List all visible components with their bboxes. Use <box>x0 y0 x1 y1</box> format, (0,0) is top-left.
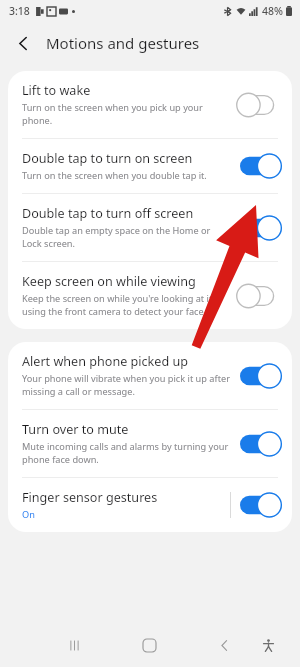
staticText: Double tap to turn off screen <box>22 205 194 222</box>
staticText: Turn over to mute <box>22 421 129 438</box>
button[interactable]: On <box>240 492 282 518</box>
staticText: On <box>22 508 35 521</box>
button[interactable]: Accessibility <box>250 627 286 663</box>
button[interactable]: On <box>240 153 282 179</box>
staticText: Mute incoming calls and alarms by turnin… <box>22 440 232 466</box>
button[interactable]: Off <box>240 283 282 309</box>
button[interactable]: Finger sensor gestures <box>8 478 292 532</box>
button[interactable]: Recents <box>54 625 94 665</box>
button[interactable]: Double tap to turn on screen <box>8 139 292 193</box>
button[interactable]: Back <box>204 625 244 665</box>
staticText: Alert when phone picked up <box>22 353 188 370</box>
staticText: Finger sensor gestures <box>22 489 158 506</box>
button[interactable]: On <box>240 363 282 389</box>
staticText: Keep the screen on while you're looking … <box>22 292 232 318</box>
button[interactable]: Alert when phone picked up <box>8 342 292 409</box>
button[interactable]: Off <box>240 92 282 118</box>
staticText: Turn on the screen when you pick up your… <box>22 101 232 127</box>
button[interactable]: Back <box>6 26 40 60</box>
staticText: Double tap an empty space on the Home or… <box>22 224 232 250</box>
button[interactable]: Turn over to mute <box>8 410 292 477</box>
button[interactable]: On <box>240 215 282 241</box>
staticText: 48% <box>262 4 283 18</box>
staticText: 3:18 <box>9 4 30 18</box>
button[interactable]: Double tap to turn off screen <box>8 194 292 261</box>
staticText: Your phone will vibrate when you pick it… <box>22 372 232 398</box>
staticText: Lift to wake <box>22 82 91 99</box>
button[interactable]: Home <box>129 625 169 665</box>
staticText: Motions and gestures <box>46 33 200 53</box>
staticText: Turn on the screen when you double tap i… <box>22 169 207 182</box>
button[interactable]: Lift to wake <box>8 71 292 138</box>
staticText: Double tap to turn on screen <box>22 150 193 167</box>
staticText: Keep screen on while viewing <box>22 273 196 290</box>
button[interactable]: Keep screen on while viewing <box>8 262 292 329</box>
button[interactable]: On <box>240 431 282 457</box>
